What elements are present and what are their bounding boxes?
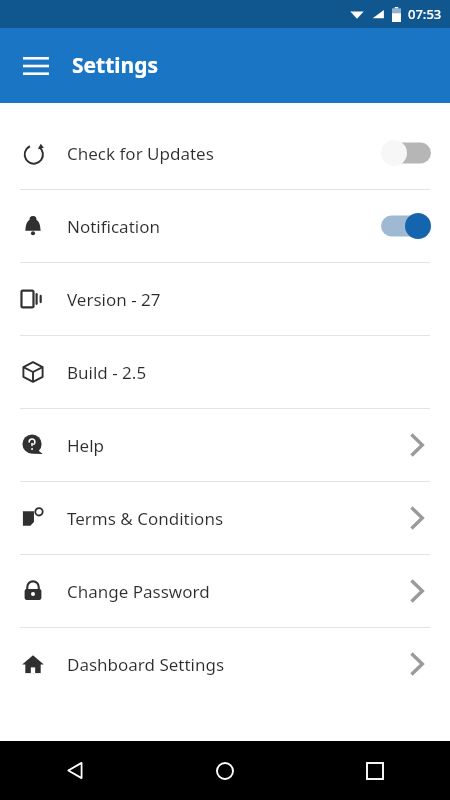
staticText: Build - 2.5: [67, 361, 434, 384]
staticText: Dashboard Settings: [67, 653, 400, 676]
other: Open: [400, 574, 434, 608]
button[interactable]: Build - 2.5: [0, 336, 450, 408]
staticText: 07:53: [408, 5, 442, 23]
staticText: Help: [67, 434, 400, 457]
other: Open: [400, 501, 434, 535]
button[interactable]: Check for Updates: [0, 117, 450, 189]
button[interactable]: Toggle off: [378, 133, 434, 173]
button[interactable]: Terms & Conditions: [0, 482, 450, 554]
staticText: Change Password: [67, 580, 400, 603]
button[interactable]: Recent apps: [300, 741, 450, 800]
button[interactable]: Toggle on: [378, 206, 434, 246]
button[interactable]: Open navigation menu: [12, 42, 60, 90]
button[interactable]: Change Password: [0, 555, 450, 627]
button[interactable]: Dashboard Settings: [0, 628, 450, 700]
button[interactable]: Version - 27: [0, 263, 450, 335]
staticText: Version - 27: [67, 288, 434, 311]
staticText: Terms & Conditions: [67, 507, 400, 530]
button[interactable]: Help: [0, 409, 450, 481]
button[interactable]: Notification: [0, 190, 450, 262]
button[interactable]: Home: [150, 741, 300, 800]
other: Open: [400, 647, 434, 681]
staticText: Settings: [72, 51, 159, 80]
button[interactable]: Back: [0, 741, 150, 800]
other: Open: [400, 428, 434, 462]
staticText: Check for Updates: [67, 142, 378, 165]
staticText: Notification: [67, 215, 378, 238]
